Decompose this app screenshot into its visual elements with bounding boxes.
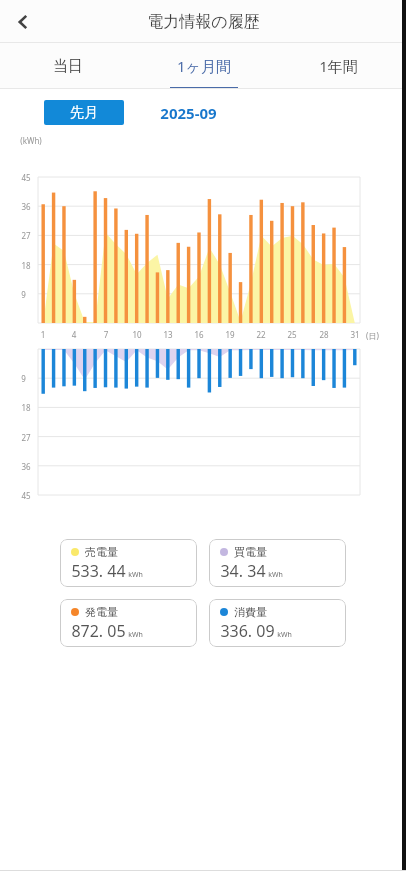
staticText: 18	[21, 260, 31, 271]
staticText: 電力情報の履歴	[147, 12, 260, 32]
staticText: 22	[255, 329, 267, 340]
staticText: 売電量	[85, 545, 118, 559]
staticText: 2025-09	[160, 103, 217, 123]
staticText: 18	[21, 402, 31, 413]
staticText: 買電量	[234, 545, 267, 559]
staticText: 27	[21, 432, 31, 443]
staticText: 25	[286, 329, 298, 340]
staticText: 28	[318, 329, 330, 340]
button[interactable]: 発電量	[60, 599, 197, 647]
staticText: 1	[37, 329, 49, 340]
button[interactable]: 1年間	[271, 43, 406, 89]
staticText: 消費量	[234, 605, 267, 619]
button[interactable]: 買電量	[209, 539, 346, 587]
staticText: 45	[21, 490, 31, 501]
button[interactable]: 先月	[44, 100, 124, 125]
staticText: kWh	[277, 630, 292, 640]
staticText: (kWh)	[20, 135, 42, 146]
staticText: 4	[68, 329, 80, 340]
staticText: 9	[21, 289, 26, 300]
staticText: 1年間	[319, 56, 358, 76]
staticText: (日)	[366, 330, 379, 341]
staticText: 発電量	[85, 605, 118, 619]
staticText: 1ヶ月間	[177, 56, 231, 76]
staticText: 7	[100, 329, 112, 340]
staticText: 36	[21, 461, 31, 472]
button[interactable]: 当日	[0, 43, 136, 89]
staticText: 9	[21, 373, 26, 384]
staticText: 45	[21, 172, 31, 183]
button[interactable]: 1ヶ月間	[136, 43, 271, 89]
staticText: 31	[349, 329, 361, 340]
button[interactable]: 売電量	[60, 539, 197, 587]
staticText: kWh	[128, 570, 143, 580]
staticText: 533. 44	[71, 560, 126, 582]
staticText: 872. 05	[71, 620, 126, 642]
staticText: 16	[193, 329, 205, 340]
staticText: 27	[21, 230, 31, 241]
staticText: kWh	[128, 630, 143, 640]
staticText: 13	[162, 329, 174, 340]
staticText: 336. 09	[220, 620, 275, 642]
staticText: 34. 34	[220, 560, 266, 582]
staticText: 10	[131, 329, 143, 340]
staticText: 当日	[53, 57, 83, 76]
staticText: 先月	[70, 104, 98, 122]
staticText: 36	[21, 201, 31, 212]
button[interactable]: Back	[6, 5, 40, 39]
staticText: kWh	[268, 570, 283, 580]
staticText: 19	[224, 329, 236, 340]
button[interactable]: 消費量	[209, 599, 346, 647]
